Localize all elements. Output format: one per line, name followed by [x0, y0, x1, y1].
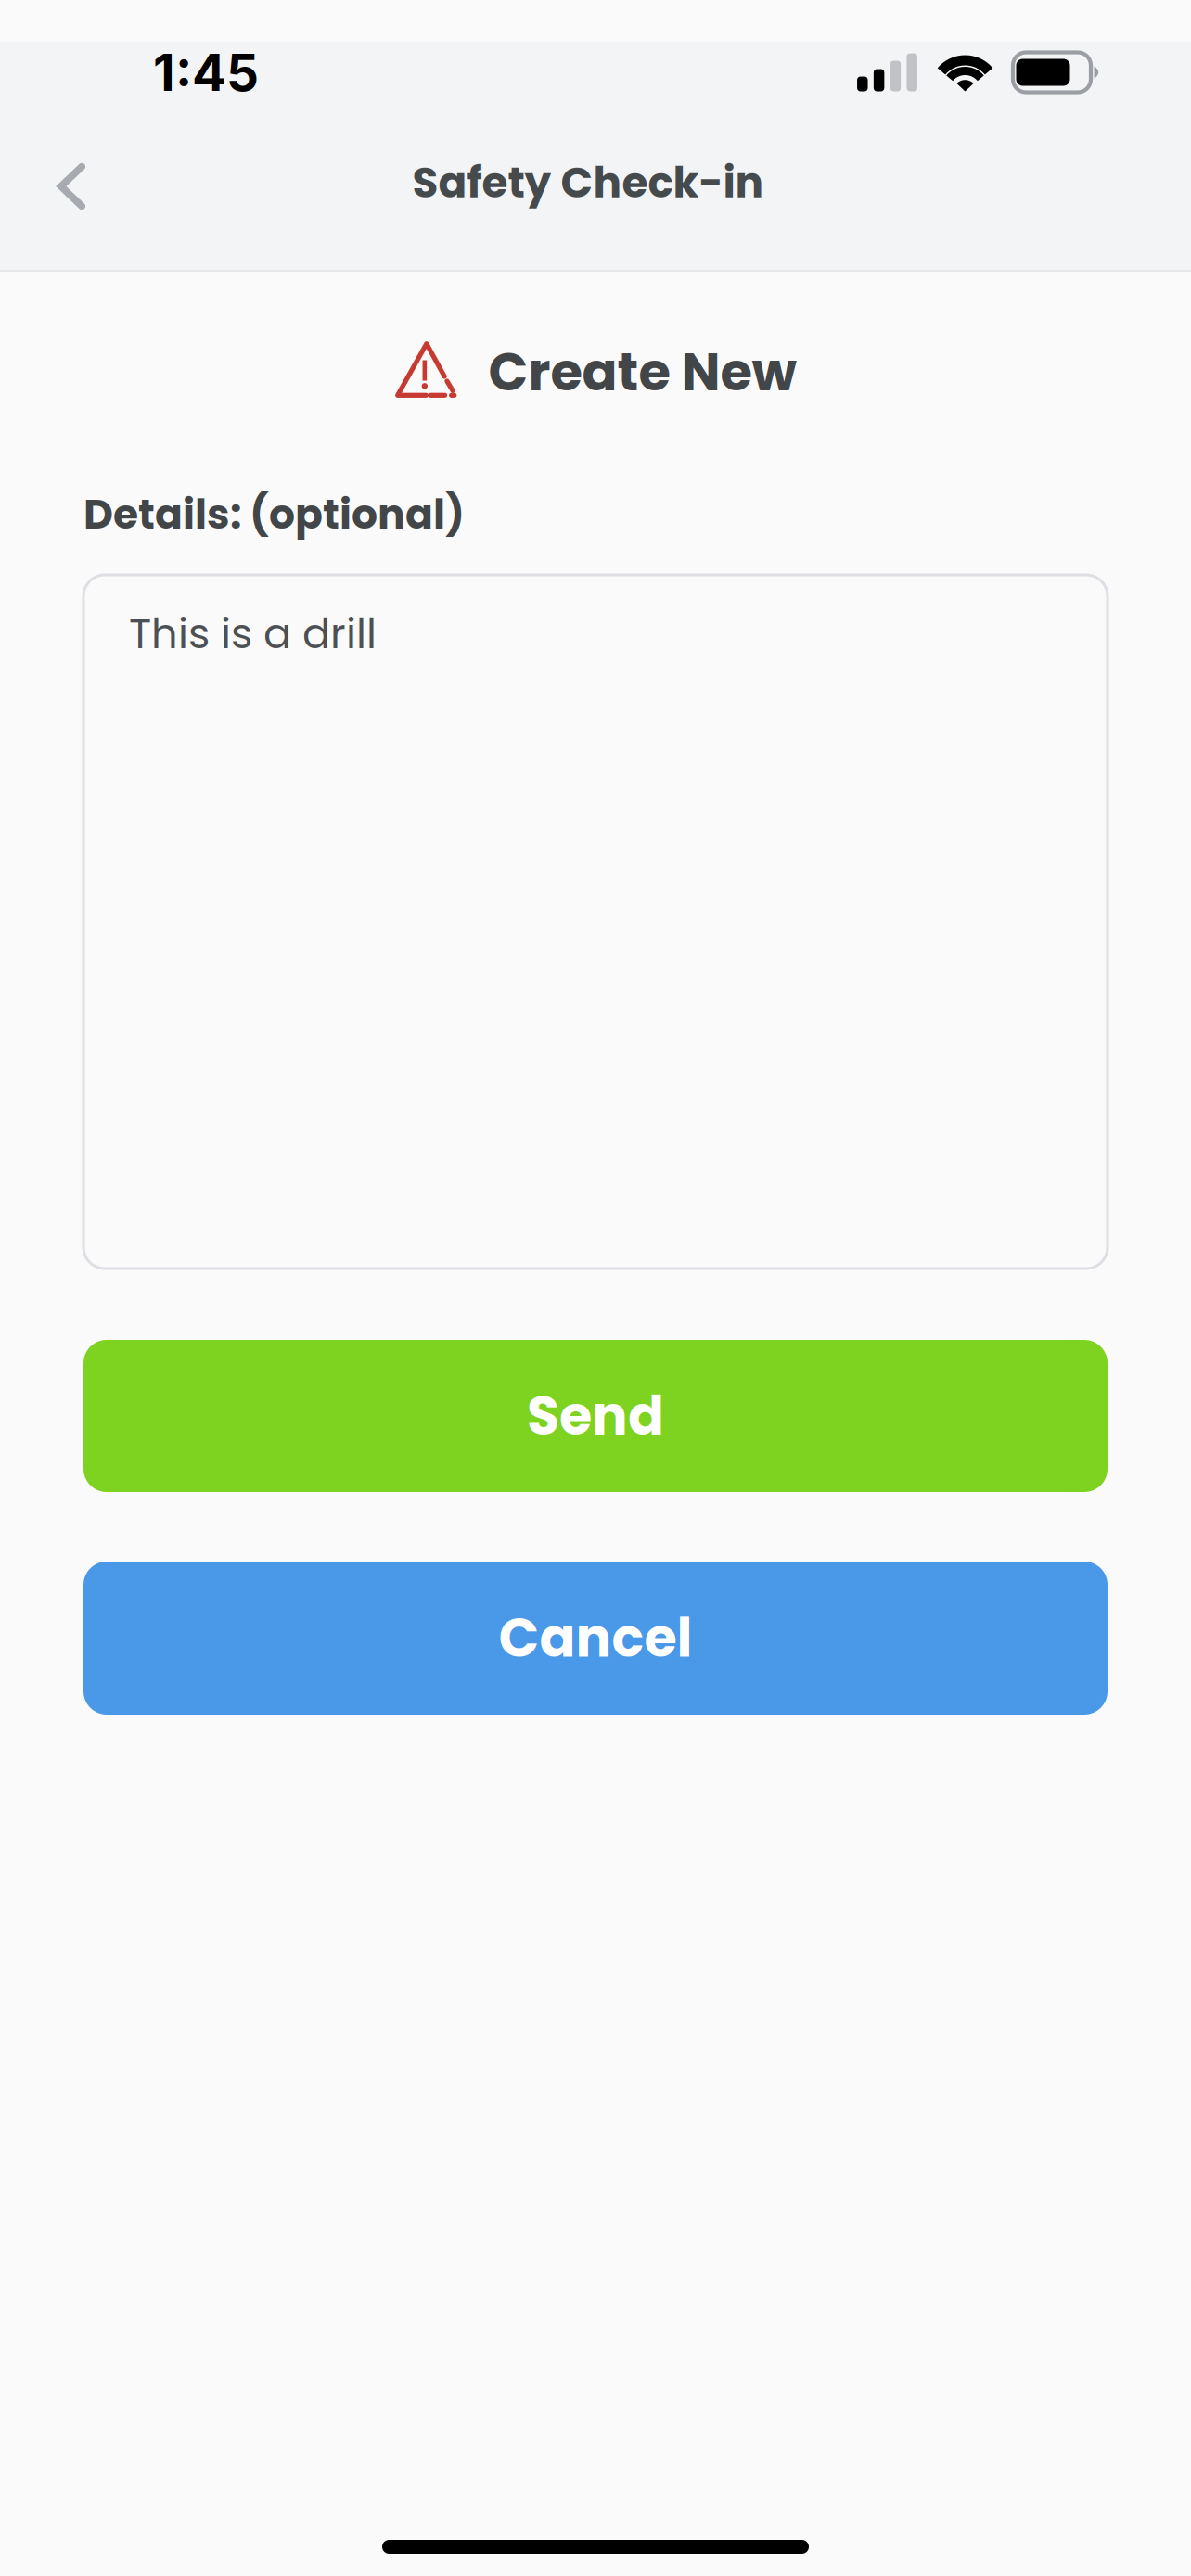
staticText: Create New	[488, 336, 796, 409]
staticText: Cancel	[499, 1601, 692, 1675]
staticText: 1:45	[153, 42, 259, 103]
button[interactable]: Send	[0, 1340, 1191, 1492]
staticText: Details: (optional)	[83, 486, 465, 543]
staticText: Safety Check-in	[412, 153, 764, 212]
button[interactable]: Back	[0, 130, 126, 242]
staticText: This is a drill	[129, 605, 377, 663]
button[interactable]: Cancel	[0, 1562, 1191, 1715]
staticText: Send	[527, 1379, 664, 1453]
